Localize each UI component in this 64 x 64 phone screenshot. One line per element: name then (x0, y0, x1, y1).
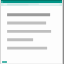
button[interactable]: Open navigation menu (1, 1, 62, 3)
button[interactable] (2, 61, 7, 63)
button[interactable] (1, 3, 62, 6)
